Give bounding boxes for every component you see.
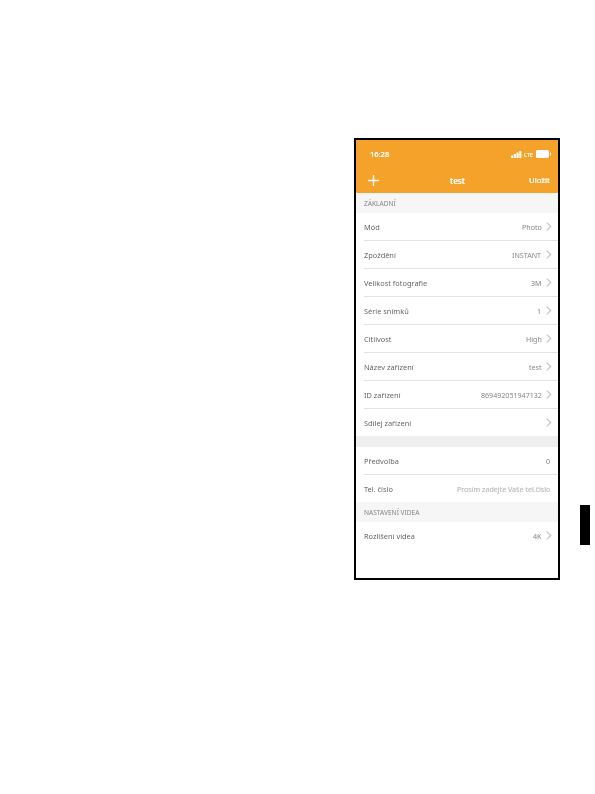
staticText: Předvolba xyxy=(364,456,399,466)
staticText: 1 xyxy=(537,306,542,316)
button[interactable]: Mód xyxy=(356,213,558,241)
staticText: Název zařízení xyxy=(364,362,414,372)
staticText: ZÁKLADNÍ xyxy=(364,199,396,208)
staticText: Zpoždění xyxy=(364,250,396,260)
button[interactable]: Rozlišení videa xyxy=(356,522,558,549)
button[interactable]: Add xyxy=(364,171,382,189)
staticText: 869492051947132 xyxy=(481,390,542,400)
button[interactable]: Velikost fotografie xyxy=(356,269,558,297)
button[interactable]: ID zařízení xyxy=(356,381,558,409)
button[interactable]: Zpoždění xyxy=(356,241,558,269)
staticText: Série snímků xyxy=(364,306,409,316)
button[interactable]: Série snímků xyxy=(356,297,558,325)
staticText: Prosím zadejte Vaše tel.číslo xyxy=(457,484,551,494)
staticText: 3M xyxy=(531,278,542,288)
staticText: High xyxy=(526,334,542,344)
button[interactable]: Tel. číslo xyxy=(356,475,558,502)
staticText: Rozlišení videa xyxy=(364,531,415,541)
button[interactable]: Uložit xyxy=(529,175,558,186)
staticText: test xyxy=(529,362,542,372)
staticText: NASTAVENÍ VIDEA xyxy=(364,508,420,517)
staticText: Citlivost xyxy=(364,334,392,344)
staticText: INSTANT xyxy=(512,250,542,260)
button[interactable]: Předvolba xyxy=(356,447,558,475)
staticText: test xyxy=(450,175,465,186)
staticText: LTE xyxy=(524,151,533,158)
staticText: 16:28 xyxy=(370,149,390,159)
staticText: ID zařízení xyxy=(364,390,401,400)
staticText: Sdílej zařízení xyxy=(364,418,412,428)
button[interactable]: Název zařízení xyxy=(356,353,558,381)
button[interactable]: Citlivost xyxy=(356,325,558,353)
staticText: Photo xyxy=(522,222,542,232)
staticText: Tel. číslo xyxy=(364,484,393,494)
button[interactable]: Sdílej zařízení xyxy=(356,409,558,436)
staticText: Velikost fotografie xyxy=(364,278,428,288)
staticText: 0 xyxy=(546,456,551,466)
staticText: 4K xyxy=(533,531,542,541)
staticText: Mód xyxy=(364,222,380,232)
